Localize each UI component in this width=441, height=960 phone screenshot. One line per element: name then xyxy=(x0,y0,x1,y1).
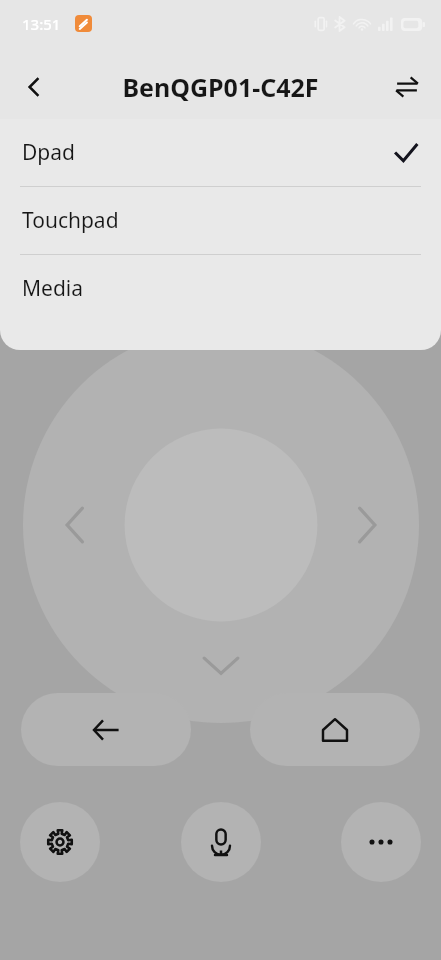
button[interactable]: D-pad xyxy=(23,327,419,723)
button[interactable]: Home xyxy=(250,693,420,766)
button[interactable]: Touchpad xyxy=(0,187,441,254)
staticText: 13:51 xyxy=(22,14,61,34)
button[interactable]: Dpad xyxy=(0,119,441,186)
button[interactable]: Media xyxy=(0,255,441,322)
button[interactable]: Voice input xyxy=(181,802,261,882)
button[interactable]: Back xyxy=(8,61,60,113)
button[interactable]: Settings xyxy=(20,802,100,882)
staticText: Touchpad xyxy=(22,206,119,235)
button[interactable]: Switch mode xyxy=(381,61,433,113)
staticText: BenQGP01-C42F xyxy=(122,70,319,104)
staticText: Dpad xyxy=(22,138,75,167)
button[interactable]: Back xyxy=(21,693,191,766)
staticText: Media xyxy=(22,274,84,303)
button[interactable]: More options xyxy=(341,802,421,882)
